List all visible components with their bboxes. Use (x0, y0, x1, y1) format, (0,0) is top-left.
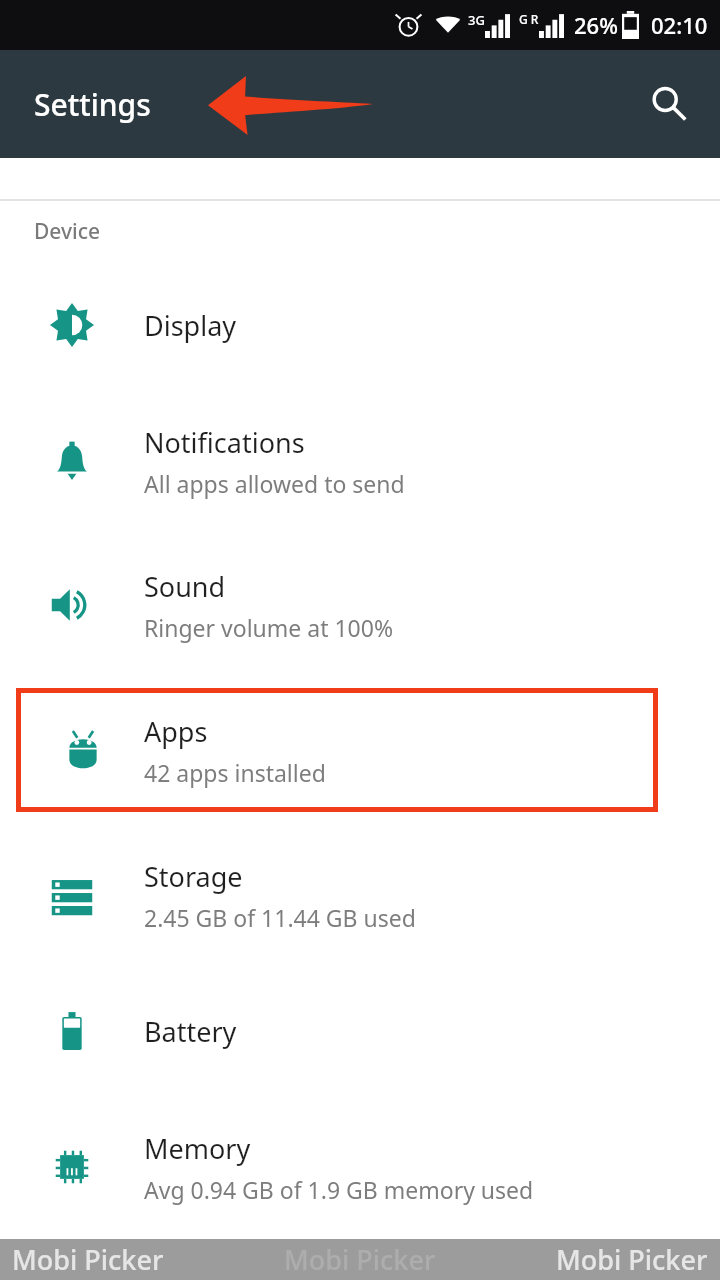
staticText: Notifications (144, 424, 305, 461)
button[interactable]: Display (0, 261, 720, 389)
staticText: 2.45 GB of 11.44 GB used (144, 902, 416, 933)
staticText: Battery (144, 1013, 237, 1050)
button[interactable]: Search (640, 75, 698, 133)
button[interactable]: Notifications (0, 389, 720, 533)
staticText: Memory (144, 1130, 251, 1167)
button[interactable]: Storage (0, 823, 720, 967)
staticText: 42 apps installed (144, 757, 326, 788)
staticText: Avg 0.94 GB of 1.9 GB memory used (144, 1174, 534, 1205)
staticText: Mobi Picker (556, 1241, 708, 1278)
staticText: Display (144, 307, 237, 344)
staticText: Device (34, 217, 101, 246)
staticText: Storage (144, 858, 243, 895)
staticText: G R (519, 11, 539, 27)
staticText: Mobi Picker (284, 1241, 436, 1278)
staticText: Settings (34, 84, 151, 125)
staticText: 3G (468, 11, 485, 29)
staticText: Sound (144, 568, 226, 605)
staticText: 26% (574, 10, 618, 40)
staticText: All apps allowed to send (144, 468, 405, 499)
button[interactable]: Memory (0, 1095, 720, 1239)
button[interactable]: Sound (0, 533, 720, 677)
staticText: Apps (144, 713, 208, 750)
button[interactable]: Apps (21, 693, 653, 807)
button[interactable]: Battery (0, 967, 720, 1095)
staticText: 02:10 (651, 10, 708, 40)
staticText: Ringer volume at 100% (144, 612, 394, 643)
staticText: Mobi Picker (12, 1241, 164, 1278)
